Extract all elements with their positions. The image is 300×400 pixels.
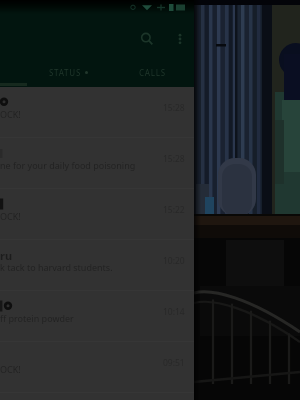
button[interactable]: Search <box>132 24 162 54</box>
staticText: OCK! <box>0 108 21 120</box>
staticText: ru <box>0 248 13 261</box>
staticText: k tack to harvard students. <box>0 261 113 273</box>
button[interactable]: STATUS <box>26 58 111 87</box>
button[interactable]: CALLS <box>111 58 194 87</box>
staticText: ff protein powder <box>0 312 74 324</box>
staticText: STATUS <box>49 67 82 78</box>
button[interactable]: More options <box>165 24 194 54</box>
staticText: CALLS <box>139 67 166 78</box>
staticText: ne for your daily food poisoning <box>0 159 136 171</box>
button[interactable] <box>0 58 26 87</box>
button[interactable]: ff protein powder <box>0 291 194 342</box>
staticText: OCK! <box>0 210 21 222</box>
staticText: OCK! <box>0 363 21 375</box>
